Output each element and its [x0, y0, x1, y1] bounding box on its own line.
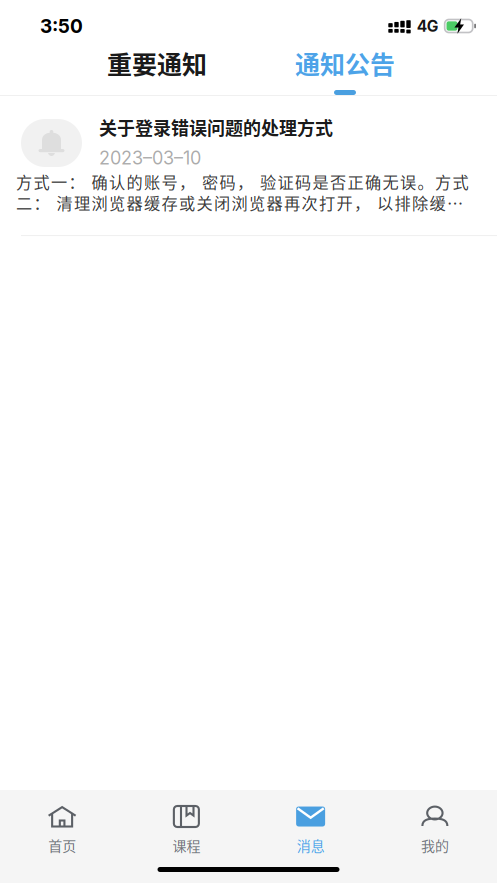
- button[interactable]: 消息: [248, 790, 373, 855]
- button[interactable]: 首页: [0, 790, 124, 855]
- staticText: 重要通知: [107, 45, 207, 81]
- staticText: 关于登录错误问题的处理方式: [99, 114, 333, 140]
- staticText: 我的: [421, 835, 449, 855]
- staticText: 方式一： 确认的账号， 密码， 验证码是否正确无误。方式二： 清理浏览器缓存或关…: [16, 171, 468, 213]
- button[interactable]: 重要通知: [98, 45, 216, 95]
- button[interactable]: 通知公告: [286, 45, 404, 95]
- staticText: 通知公告: [295, 45, 395, 81]
- staticText: 首页: [48, 835, 76, 855]
- staticText: 消息: [297, 835, 325, 855]
- staticText: 课程: [172, 835, 200, 855]
- button[interactable]: 关于登录错误问题的处理方式: [0, 96, 497, 236]
- button[interactable]: 课程: [124, 790, 248, 855]
- staticText: 2023–03–10: [99, 147, 201, 169]
- button[interactable]: 我的: [373, 790, 497, 855]
- staticText: 4G: [417, 17, 439, 35]
- staticText: 3:50: [40, 14, 83, 37]
